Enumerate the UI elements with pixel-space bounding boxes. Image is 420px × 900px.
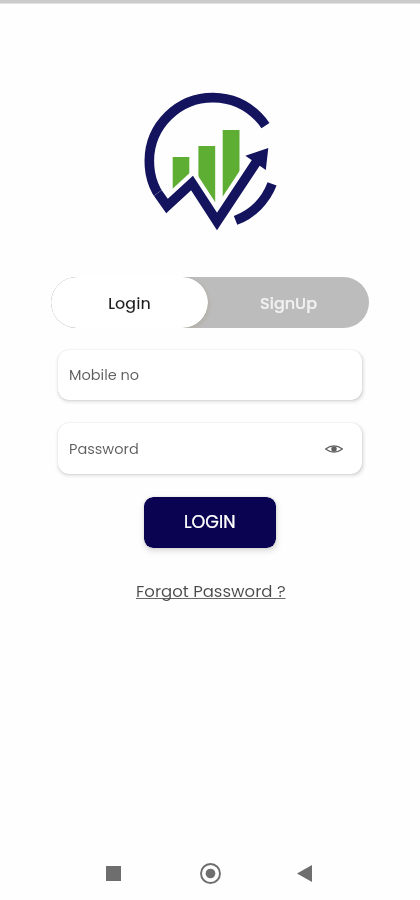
staticText: SignUp (260, 292, 318, 314)
button[interactable]: Password (58, 423, 362, 474)
button[interactable]: Back (280, 849, 328, 897)
button[interactable]: LOGIN (144, 497, 276, 548)
staticText: Password (69, 439, 139, 459)
staticText: LOGIN (184, 510, 236, 535)
staticText: Login (108, 292, 151, 314)
button[interactable]: Mobile no (58, 350, 362, 400)
button[interactable]: Login (51, 277, 208, 328)
staticText: Forgot Password ? (136, 580, 286, 603)
button[interactable]: Show password (322, 437, 346, 461)
staticText: Mobile no (69, 365, 140, 385)
button[interactable]: Forgot Password ? (135, 578, 287, 604)
button[interactable]: Recent apps (89, 849, 137, 897)
button[interactable]: Home (186, 849, 234, 897)
button[interactable]: SignUp (208, 277, 369, 328)
